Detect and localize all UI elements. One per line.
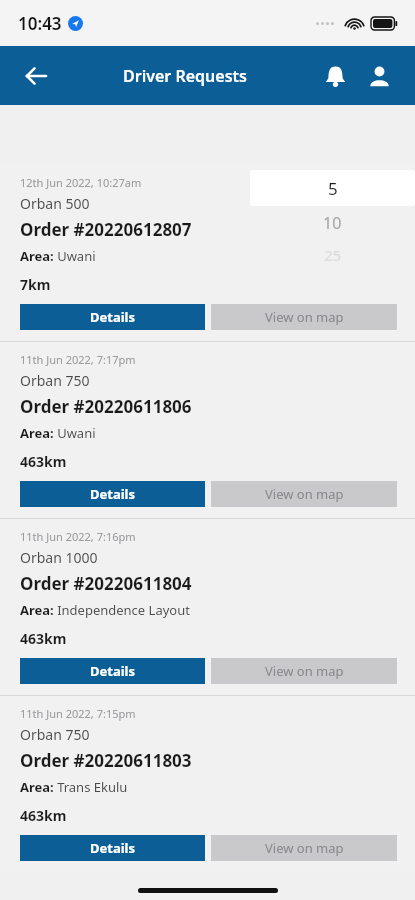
button[interactable]: Profile (357, 54, 401, 98)
button[interactable]: 12th Jun 2022, 10:27am (0, 165, 415, 341)
button[interactable]: 11th Jun 2022, 7:16pm (0, 519, 415, 695)
staticText: 11th Jun 2022, 7:16pm (20, 529, 136, 544)
staticText: View on map (265, 485, 344, 503)
staticText: 25 (324, 245, 342, 265)
staticText: Orban 500 (20, 194, 90, 213)
button[interactable]: 11th Jun 2022, 7:17pm (0, 342, 415, 518)
staticText: View on map (265, 662, 344, 680)
staticText: 463km (20, 629, 67, 648)
button[interactable]: View on map (211, 658, 397, 684)
staticText: View on map (265, 308, 344, 326)
button[interactable]: Details (20, 481, 205, 507)
staticText: Order #20220612807 (20, 218, 192, 241)
staticText: Orban 750 (20, 725, 90, 744)
staticText: Orban 750 (20, 371, 90, 390)
staticText: 463km (20, 806, 67, 825)
staticText: View on map (265, 839, 344, 857)
staticText: Order #20220611806 (20, 395, 192, 418)
staticText: 12th Jun 2022, 10:27am (20, 175, 142, 190)
button[interactable]: View on map (211, 304, 397, 330)
button[interactable]: View on map (211, 835, 397, 861)
button[interactable]: Details (20, 304, 205, 330)
button[interactable]: Details (20, 658, 205, 684)
button[interactable]: View on map (211, 481, 397, 507)
staticText: Order #20220611804 (20, 572, 192, 595)
staticText: 10:43 (18, 12, 62, 35)
staticText: Area: Trans Ekulu (20, 778, 128, 796)
staticText: 7km (20, 275, 51, 294)
staticText: 10 (323, 212, 342, 234)
staticText: 5 (328, 177, 338, 200)
button[interactable]: Notifications (313, 54, 357, 98)
button[interactable]: Details (20, 835, 205, 861)
staticText: Details (90, 308, 135, 326)
button[interactable]: 5 (250, 170, 415, 206)
button[interactable]: 11th Jun 2022, 7:15pm (0, 696, 415, 872)
staticText: Details (90, 839, 135, 857)
button[interactable]: Back (14, 54, 58, 98)
staticText: 463km (20, 452, 67, 471)
staticText: Area: Independence Layout (20, 601, 190, 619)
staticText: Details (90, 485, 135, 503)
staticText: Area: Uwani (20, 424, 96, 442)
staticText: 11th Jun 2022, 7:15pm (20, 706, 136, 721)
staticText: Details (90, 662, 135, 680)
staticText: Order #20220611803 (20, 749, 192, 772)
staticText: Area: Uwani (20, 247, 96, 265)
staticText: 11th Jun 2022, 7:17pm (20, 352, 136, 367)
staticText: Driver Requests (123, 65, 247, 87)
staticText: Orban 1000 (20, 548, 98, 567)
